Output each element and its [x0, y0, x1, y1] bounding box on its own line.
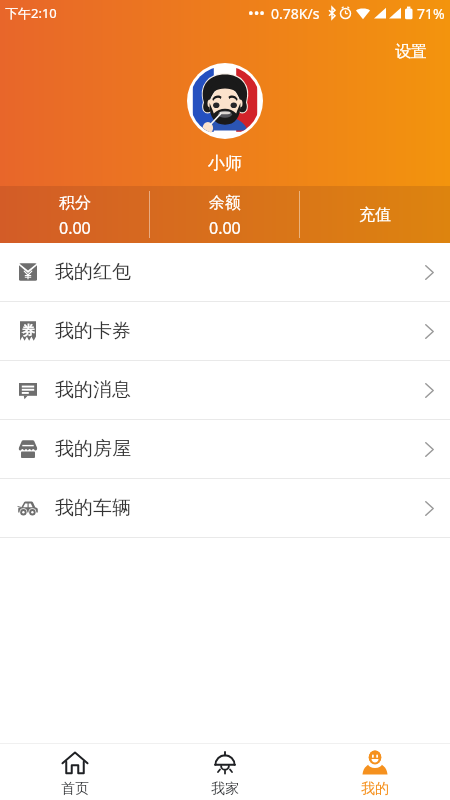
staticText: 充值	[359, 205, 391, 225]
button[interactable]: 首页	[0, 744, 150, 800]
staticText: 我的车辆	[55, 496, 131, 520]
button[interactable]: 我家	[150, 744, 300, 800]
staticText: 余额	[209, 193, 241, 213]
staticText: 我的消息	[55, 378, 131, 402]
staticText: 我的房屋	[55, 437, 131, 461]
staticText: 下午2:10	[5, 4, 57, 22]
button[interactable]: 设置	[375, 32, 450, 70]
staticText: 设置	[395, 42, 427, 62]
button[interactable]: 我的红包	[0, 243, 450, 301]
staticText: 0.00	[209, 217, 241, 239]
staticText: 我的红包	[55, 260, 131, 284]
staticText: 券	[22, 322, 35, 338]
staticText: 0.00	[59, 217, 91, 239]
staticText: 0.78K/s	[271, 4, 320, 23]
button[interactable]: Avatar	[187, 63, 263, 139]
button[interactable]: 我的房屋	[0, 420, 450, 478]
staticText: 71%	[417, 4, 445, 23]
staticText: •••	[248, 3, 265, 23]
staticText: 我的	[361, 780, 389, 798]
staticText: 积分	[59, 193, 91, 213]
button[interactable]: 我的车辆	[0, 479, 450, 537]
staticText: 我的卡券	[55, 319, 131, 343]
staticText: 首页	[61, 780, 89, 798]
button[interactable]: 券	[0, 302, 450, 360]
button[interactable]: 我的消息	[0, 361, 450, 419]
button[interactable]: 余额	[150, 186, 299, 243]
button[interactable]: 充值	[300, 186, 450, 243]
staticText: 小师	[208, 153, 242, 174]
staticText: 我家	[211, 780, 239, 798]
button[interactable]: 我的	[300, 744, 450, 800]
button[interactable]: 积分	[0, 186, 149, 243]
